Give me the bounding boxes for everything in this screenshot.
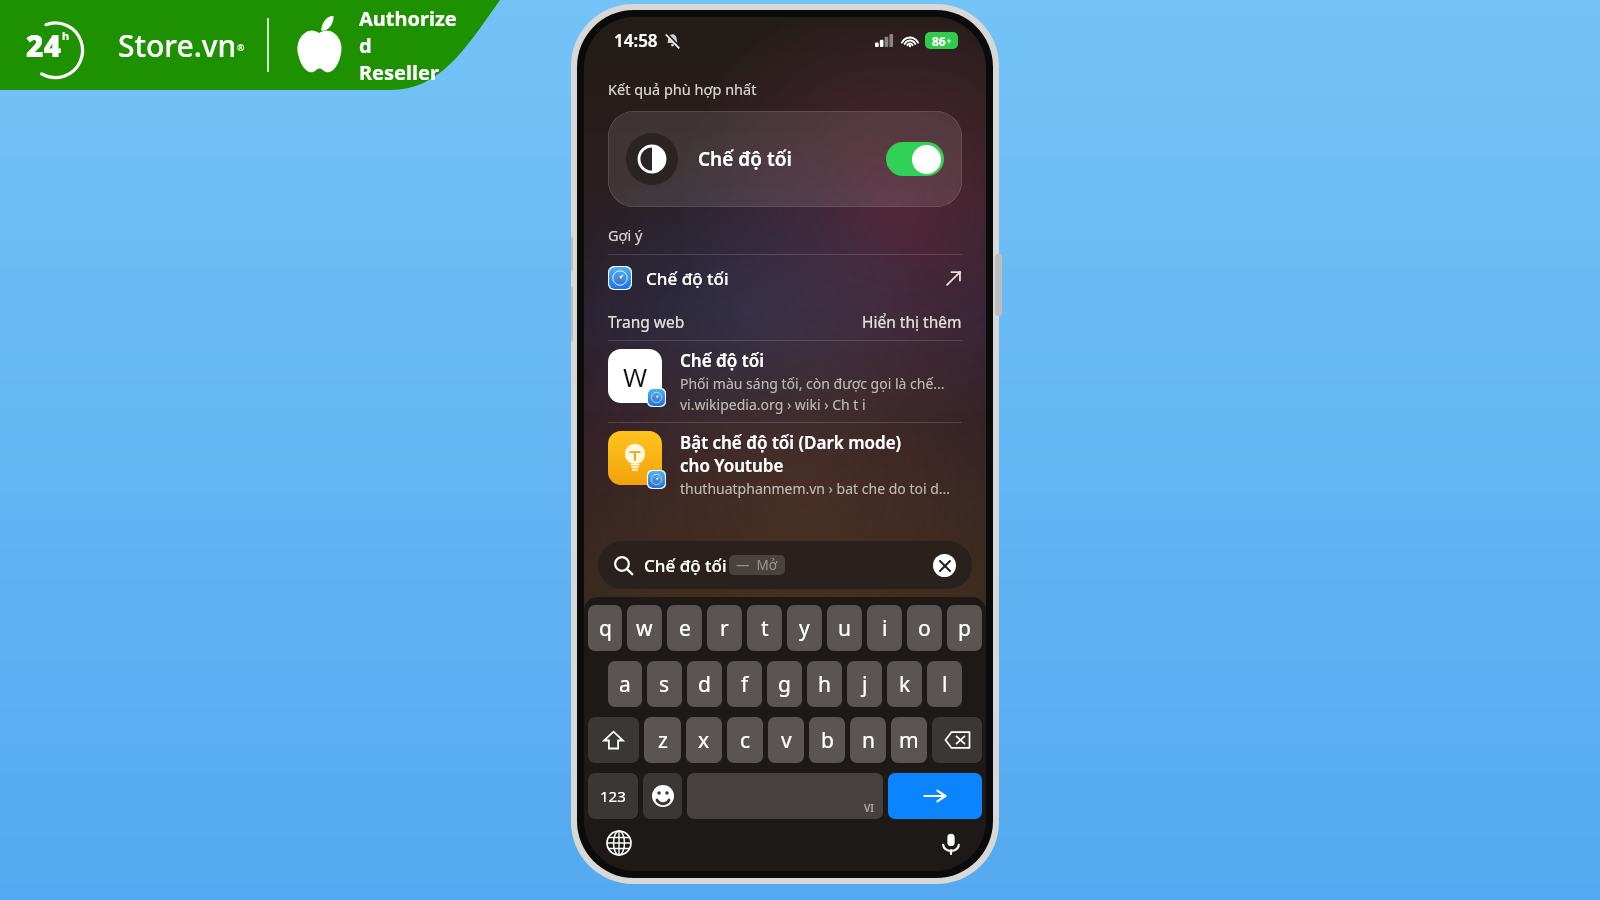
button[interactable]: 123: [588, 773, 638, 819]
staticText: i: [882, 614, 888, 643]
staticText: u: [838, 614, 851, 643]
button[interactable]: Backspace: [932, 717, 982, 763]
button[interactable]: a: [608, 661, 642, 707]
staticText: Kết quả phù hợp nhất: [608, 79, 757, 99]
button[interactable]: Go: [888, 773, 982, 819]
button[interactable]: s: [647, 661, 682, 707]
button[interactable]: b: [809, 717, 845, 763]
button[interactable]: W: [608, 349, 962, 414]
button[interactable]: p: [947, 605, 982, 651]
button[interactable]: c: [727, 717, 763, 763]
button[interactable]: Shift: [588, 717, 639, 763]
staticText: p: [958, 614, 971, 643]
button[interactable]: Bật chế độ tối (Dark mode): [608, 431, 962, 498]
button[interactable]: v: [768, 717, 804, 763]
staticText: Gợi ý: [608, 225, 643, 245]
button[interactable]: Chế độ tối: [608, 111, 962, 207]
staticText: Chế độ tối: [680, 349, 764, 372]
button[interactable]: m: [891, 717, 927, 763]
button[interactable]: Chế độ tối: [598, 541, 972, 589]
staticText: v: [781, 726, 792, 755]
button[interactable]: i: [867, 605, 902, 651]
staticText: Bật chế độ tối (Dark mode): [680, 431, 902, 454]
button[interactable]: u: [827, 605, 862, 651]
staticText: Authorized: [359, 5, 460, 59]
staticText: Chế độ tối: [644, 554, 727, 577]
button[interactable]: Space: [687, 773, 883, 819]
button[interactable]: o: [907, 605, 942, 651]
staticText: thuthuatphanmem.vn › bat che do toi d...: [680, 479, 951, 498]
staticText: 123: [600, 786, 626, 806]
button[interactable]: e: [667, 605, 702, 651]
staticText: Reseller: [359, 59, 439, 86]
staticText: a: [619, 670, 631, 699]
staticText: Trang web: [608, 311, 685, 332]
staticText: b: [821, 726, 834, 755]
staticText: ®: [237, 41, 245, 53]
staticText: t: [761, 614, 769, 643]
button[interactable]: h: [807, 661, 842, 707]
other: Silent mode: [665, 33, 680, 48]
button[interactable]: Clear search: [933, 554, 956, 577]
staticText: f: [741, 670, 749, 699]
staticText: w: [636, 614, 653, 643]
staticText: m: [899, 726, 919, 755]
staticText: h: [62, 28, 70, 43]
staticText: W: [623, 359, 648, 394]
button[interactable]: Switch language: [606, 830, 632, 856]
staticText: s: [659, 670, 670, 699]
button[interactable]: Emoji: [643, 773, 682, 819]
staticText: x: [698, 726, 710, 755]
button[interactable]: t: [747, 605, 782, 651]
staticText: g: [778, 670, 791, 699]
staticText: l: [942, 670, 948, 699]
staticText: j: [862, 670, 868, 699]
button[interactable]: q: [588, 605, 622, 651]
staticText: VI: [864, 801, 875, 815]
button[interactable]: n: [850, 717, 886, 763]
other: Open suggestion: [945, 270, 962, 287]
staticText: q: [599, 614, 612, 643]
button[interactable]: Hiển thị thêm: [862, 311, 962, 332]
staticText: vi.wikipedia.org › wiki › Ch t i: [680, 395, 866, 414]
staticText: 86: [932, 33, 946, 49]
button[interactable]: k: [887, 661, 922, 707]
button[interactable]: j: [847, 661, 882, 707]
button[interactable]: Chế độ tối: [608, 255, 962, 301]
staticText: cho Youtube: [680, 454, 784, 477]
button[interactable]: f: [727, 661, 762, 707]
button[interactable]: w: [627, 605, 662, 651]
staticText: Hiển thị thêm: [862, 311, 962, 332]
staticText: Chế độ tối: [698, 146, 792, 172]
staticText: Store.vn: [118, 25, 237, 66]
button[interactable]: z: [644, 717, 681, 763]
button[interactable]: x: [686, 717, 722, 763]
staticText: z: [658, 726, 668, 755]
button[interactable]: y: [787, 605, 822, 651]
staticText: y: [799, 614, 810, 643]
button[interactable]: d: [687, 661, 722, 707]
button[interactable]: r: [707, 605, 742, 651]
staticText: c: [740, 726, 751, 755]
staticText: d: [698, 670, 711, 699]
button[interactable]: Dark mode toggle: [886, 142, 944, 176]
staticText: n: [862, 726, 875, 755]
button[interactable]: g: [767, 661, 802, 707]
staticText: h: [818, 670, 831, 699]
staticText: — Mở: [736, 556, 778, 574]
staticText: e: [679, 614, 691, 643]
staticText: 24: [26, 25, 62, 66]
staticText: r: [720, 614, 729, 643]
button[interactable]: l: [927, 661, 962, 707]
button[interactable]: Dictation: [938, 830, 964, 856]
staticText: Chế độ tối: [646, 267, 729, 290]
staticText: 14:58: [614, 29, 658, 52]
staticText: Phối màu sáng tối, còn được gọi là chế..…: [680, 374, 945, 393]
staticText: k: [899, 670, 911, 699]
staticText: o: [918, 614, 931, 643]
